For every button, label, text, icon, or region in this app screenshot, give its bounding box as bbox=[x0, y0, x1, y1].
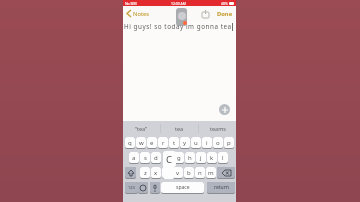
staticText: b bbox=[187, 169, 191, 177]
staticText: tea bbox=[175, 125, 184, 132]
staticText: n bbox=[198, 169, 202, 177]
staticText: p bbox=[227, 139, 231, 147]
button[interactable]: Done bbox=[217, 10, 233, 18]
staticText: No SIM bbox=[125, 1, 137, 6]
button[interactable]: d bbox=[151, 152, 161, 163]
staticText: f bbox=[167, 154, 170, 162]
button[interactable]: Notes bbox=[133, 10, 150, 18]
staticText: Hi guys! so today im gonna tea bbox=[124, 22, 232, 31]
staticText: y bbox=[183, 139, 187, 147]
button[interactable]: v bbox=[173, 167, 183, 178]
button[interactable]: f bbox=[163, 152, 173, 163]
button[interactable]: tea bbox=[161, 121, 198, 136]
button[interactable]: 123 bbox=[125, 182, 138, 193]
button[interactable]: q bbox=[125, 137, 135, 148]
button[interactable]: s bbox=[140, 152, 150, 163]
button[interactable]: c bbox=[162, 167, 172, 178]
button[interactable]: o bbox=[213, 137, 223, 148]
staticText: 48% bbox=[221, 1, 228, 6]
button[interactable]: return bbox=[207, 182, 235, 193]
button[interactable] bbox=[138, 182, 148, 193]
button[interactable]: z bbox=[140, 167, 150, 178]
button[interactable] bbox=[217, 167, 235, 178]
staticText: space bbox=[176, 184, 190, 191]
button[interactable]: n bbox=[195, 167, 205, 178]
staticText: o bbox=[216, 139, 220, 147]
staticText: teams bbox=[210, 125, 226, 132]
button[interactable]: t bbox=[169, 137, 179, 148]
button[interactable]: r bbox=[158, 137, 168, 148]
button[interactable]: teams bbox=[199, 121, 236, 136]
button[interactable] bbox=[176, 8, 187, 26]
staticText: “tea” bbox=[135, 125, 148, 132]
staticText: h bbox=[188, 154, 192, 162]
button[interactable]: w bbox=[136, 137, 146, 148]
button[interactable]: p bbox=[224, 137, 234, 148]
staticText: d bbox=[154, 154, 158, 162]
staticText: C bbox=[166, 153, 173, 166]
button[interactable]: m bbox=[206, 167, 216, 178]
button[interactable]: space bbox=[161, 182, 204, 193]
button[interactable]: l bbox=[218, 152, 228, 163]
button[interactable]: u bbox=[191, 137, 201, 148]
staticText: i bbox=[206, 139, 208, 147]
button[interactable]: h bbox=[185, 152, 195, 163]
staticText: w bbox=[139, 139, 144, 147]
staticText: 123 bbox=[128, 185, 135, 190]
staticText: r bbox=[162, 139, 165, 147]
button[interactable] bbox=[219, 104, 230, 115]
staticText: t bbox=[173, 139, 176, 147]
staticText: q bbox=[128, 139, 132, 147]
button[interactable]: g bbox=[174, 152, 184, 163]
staticText: u bbox=[194, 139, 198, 147]
staticText: Done bbox=[217, 10, 233, 18]
button[interactable]: j bbox=[196, 152, 206, 163]
staticText: 12:03 AM bbox=[171, 1, 186, 6]
staticText: m bbox=[208, 169, 214, 177]
staticText: k bbox=[210, 154, 214, 162]
button[interactable]: b bbox=[184, 167, 194, 178]
button[interactable] bbox=[125, 167, 136, 178]
button[interactable]: e bbox=[147, 137, 157, 148]
button[interactable]: x bbox=[151, 167, 161, 178]
staticText: x bbox=[154, 169, 158, 177]
staticText: g bbox=[177, 154, 181, 162]
button[interactable]: a bbox=[129, 152, 139, 163]
button[interactable]: “tea” bbox=[123, 121, 160, 136]
staticText: Notes bbox=[133, 10, 150, 18]
staticText: e bbox=[150, 139, 154, 147]
staticText: v bbox=[176, 169, 180, 177]
staticText: j bbox=[200, 154, 202, 162]
staticText: z bbox=[144, 169, 147, 177]
button[interactable] bbox=[150, 182, 160, 193]
staticText: s bbox=[144, 154, 147, 162]
staticText: a bbox=[132, 154, 136, 162]
button[interactable]: i bbox=[202, 137, 212, 148]
button[interactable]: y bbox=[180, 137, 190, 148]
button[interactable]: k bbox=[207, 152, 217, 163]
staticText: l bbox=[222, 154, 224, 162]
staticText: return bbox=[214, 184, 229, 191]
